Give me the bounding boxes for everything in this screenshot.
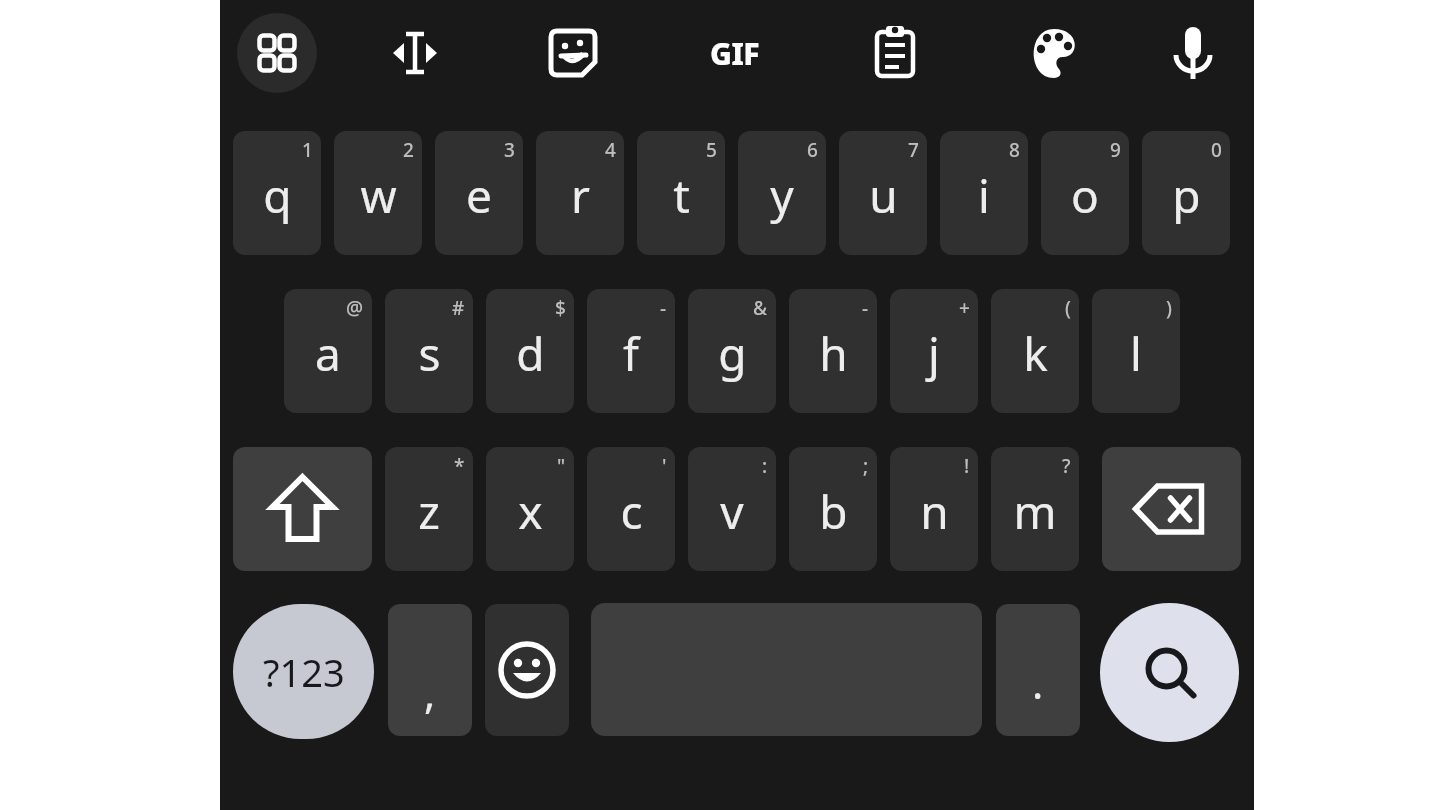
button[interactable]: . xyxy=(996,604,1080,736)
button[interactable]: q xyxy=(233,131,321,255)
staticText: 8 xyxy=(1009,137,1020,163)
button[interactable]: j xyxy=(890,289,978,413)
button[interactable]: Move cursor xyxy=(375,13,455,93)
staticText: " xyxy=(557,453,566,479)
button[interactable]: b xyxy=(789,447,877,571)
button[interactable]: Search xyxy=(1100,603,1239,742)
staticText: ' xyxy=(662,453,667,479)
button[interactable]: c xyxy=(587,447,675,571)
staticText: - xyxy=(862,295,869,321)
staticText: , xyxy=(424,664,436,721)
button[interactable]: Stickers xyxy=(533,13,613,93)
button[interactable]: w xyxy=(334,131,422,255)
staticText: g xyxy=(718,322,747,385)
staticText: @ xyxy=(346,295,364,321)
staticText: v xyxy=(720,480,744,543)
staticText: 3 xyxy=(504,137,515,163)
staticText: # xyxy=(452,295,465,321)
staticText: t xyxy=(673,164,690,227)
staticText: n xyxy=(920,480,949,543)
staticText: e xyxy=(466,164,492,227)
staticText: & xyxy=(753,295,768,321)
staticText: r xyxy=(571,164,590,227)
staticText: ! xyxy=(964,453,970,479)
staticText: $ xyxy=(555,295,566,321)
button[interactable]: z xyxy=(385,447,473,571)
button[interactable]: , xyxy=(388,604,472,736)
staticText: u xyxy=(869,164,898,227)
staticText: * xyxy=(454,453,465,479)
button[interactable]: Emoji xyxy=(485,604,569,736)
button[interactable]: Toolbar menu xyxy=(237,13,317,93)
staticText: b xyxy=(819,480,848,543)
button[interactable]: Shift xyxy=(233,447,372,571)
staticText: . xyxy=(1032,654,1044,711)
staticText: ( xyxy=(1065,295,1071,321)
staticText: w xyxy=(360,164,397,227)
button[interactable]: u xyxy=(839,131,927,255)
button[interactable]: v xyxy=(688,447,776,571)
staticText: 4 xyxy=(605,137,616,163)
staticText: p xyxy=(1172,164,1201,227)
button[interactable]: GIF xyxy=(695,13,775,93)
staticText: ? xyxy=(1062,453,1071,479)
button[interactable]: Voice input xyxy=(1153,13,1233,93)
button[interactable]: x xyxy=(486,447,574,571)
staticText: 1 xyxy=(302,137,313,163)
button[interactable]: l xyxy=(1092,289,1180,413)
staticText: a xyxy=(315,322,341,385)
button[interactable]: f xyxy=(587,289,675,413)
staticText: k xyxy=(1023,322,1048,385)
staticText: q xyxy=(263,164,292,227)
button[interactable]: t xyxy=(637,131,725,255)
staticText: 6 xyxy=(807,137,818,163)
staticText: i xyxy=(978,164,990,227)
button[interactable]: m xyxy=(991,447,1079,571)
staticText: GIF xyxy=(710,33,760,74)
staticText: o xyxy=(1071,164,1099,227)
staticText: m xyxy=(1013,480,1057,543)
button[interactable]: Themes xyxy=(1014,13,1094,93)
button[interactable]: ?123 xyxy=(233,604,374,739)
button[interactable]: r xyxy=(536,131,624,255)
staticText: l xyxy=(1130,322,1142,385)
staticText: ; xyxy=(863,453,869,479)
staticText: y xyxy=(770,164,794,227)
staticText: j xyxy=(928,322,940,385)
staticText: ) xyxy=(1166,295,1172,321)
staticText: 0 xyxy=(1211,137,1222,163)
button[interactable]: o xyxy=(1041,131,1129,255)
staticText: 7 xyxy=(908,137,919,163)
staticText: h xyxy=(819,322,848,385)
staticText: d xyxy=(516,322,545,385)
button[interactable]: g xyxy=(688,289,776,413)
staticText: z xyxy=(418,480,440,543)
button[interactable]: e xyxy=(435,131,523,255)
button[interactable]: k xyxy=(991,289,1079,413)
button[interactable]: y xyxy=(738,131,826,255)
button[interactable]: p xyxy=(1142,131,1230,255)
staticText: x xyxy=(518,480,543,543)
staticText: ?123 xyxy=(263,646,345,698)
staticText: : xyxy=(762,453,768,479)
staticText: c xyxy=(620,480,643,543)
staticText: f xyxy=(623,322,639,385)
staticText: + xyxy=(959,295,970,321)
button[interactable]: i xyxy=(940,131,1028,255)
button[interactable]: h xyxy=(789,289,877,413)
button[interactable]: d xyxy=(486,289,574,413)
staticText: 9 xyxy=(1110,137,1121,163)
button[interactable]: a xyxy=(284,289,372,413)
button[interactable]: Backspace xyxy=(1102,447,1241,571)
staticText: 2 xyxy=(403,137,414,163)
button[interactable]: s xyxy=(385,289,473,413)
staticText: - xyxy=(660,295,667,321)
button[interactable]: n xyxy=(890,447,978,571)
staticText: s xyxy=(418,322,441,385)
button[interactable]: Clipboard xyxy=(855,13,935,93)
staticText: 5 xyxy=(706,137,717,163)
